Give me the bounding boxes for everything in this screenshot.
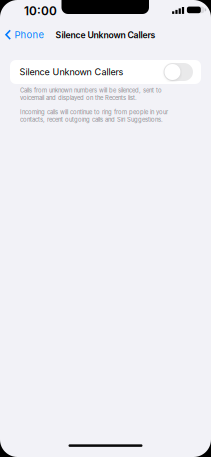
staticText: Silence Unknown Callers	[19, 67, 123, 77]
staticText: Phone	[14, 29, 44, 40]
staticText: voicemail and displayed on the Recents l…	[20, 94, 137, 101]
button[interactable]: Silence Unknown Callers	[163, 63, 193, 81]
staticText: Silence Unknown Callers	[55, 30, 155, 40]
button[interactable]: Back	[0, 28, 48, 42]
staticText: Incoming calls will continue to ring fro…	[20, 109, 168, 115]
staticText: 10:00	[24, 4, 57, 18]
staticText: Calls from unknown numbers will be silen…	[20, 87, 162, 94]
staticText: contacts, recent outgoing calls and Siri…	[20, 116, 163, 123]
